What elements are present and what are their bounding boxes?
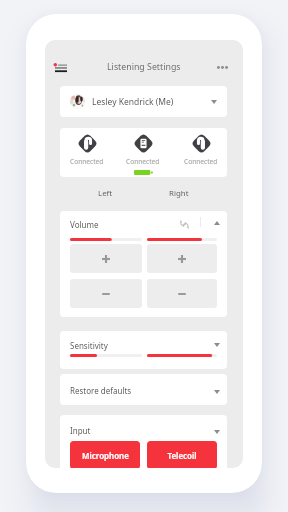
button[interactable]: Expand <box>209 424 225 440</box>
staticText: Microphone <box>82 450 129 461</box>
button[interactable]: Hearing aid connected <box>180 133 222 166</box>
button[interactable]: Right <box>151 184 207 202</box>
button[interactable]: Decrease <box>147 279 217 308</box>
button[interactable]: Increase <box>147 244 217 273</box>
staticText: Connected <box>70 157 104 166</box>
staticText: Volume <box>70 219 99 230</box>
button[interactable]: Increase <box>70 244 142 273</box>
staticText: Listening Settings <box>107 61 181 73</box>
button[interactable]: Sensitivity <box>60 331 227 369</box>
staticText: Input <box>70 425 91 436</box>
button[interactable]: Microphone <box>70 441 140 468</box>
button[interactable]: Collapse <box>209 215 225 231</box>
staticText: Connected <box>184 157 218 166</box>
button[interactable]: Menu <box>50 57 72 79</box>
button[interactable]: Telecoil <box>147 441 217 468</box>
staticText: Lesley Kendrick (Me) <box>92 96 174 108</box>
staticText: Sensitivity <box>70 340 108 351</box>
staticText: Right <box>169 188 189 199</box>
button[interactable]: Phone connected <box>122 133 164 175</box>
staticText: Left <box>98 188 113 199</box>
button[interactable]: Left <box>77 184 133 202</box>
button[interactable]: Lesley Kendrick (Me) <box>60 86 227 117</box>
staticText: Connected <box>126 157 160 166</box>
staticText: Telecoil <box>167 450 197 461</box>
button[interactable]: Hearing aid connected <box>66 133 108 166</box>
button[interactable]: More options <box>211 56 233 78</box>
button[interactable]: Decrease <box>70 279 142 308</box>
button[interactable]: Restore defaults <box>60 374 227 405</box>
staticText: Restore defaults <box>70 385 132 396</box>
button[interactable]: Expand <box>209 384 225 400</box>
button[interactable]: Expand <box>209 337 225 353</box>
button[interactable]: Unlink volume <box>176 216 192 232</box>
